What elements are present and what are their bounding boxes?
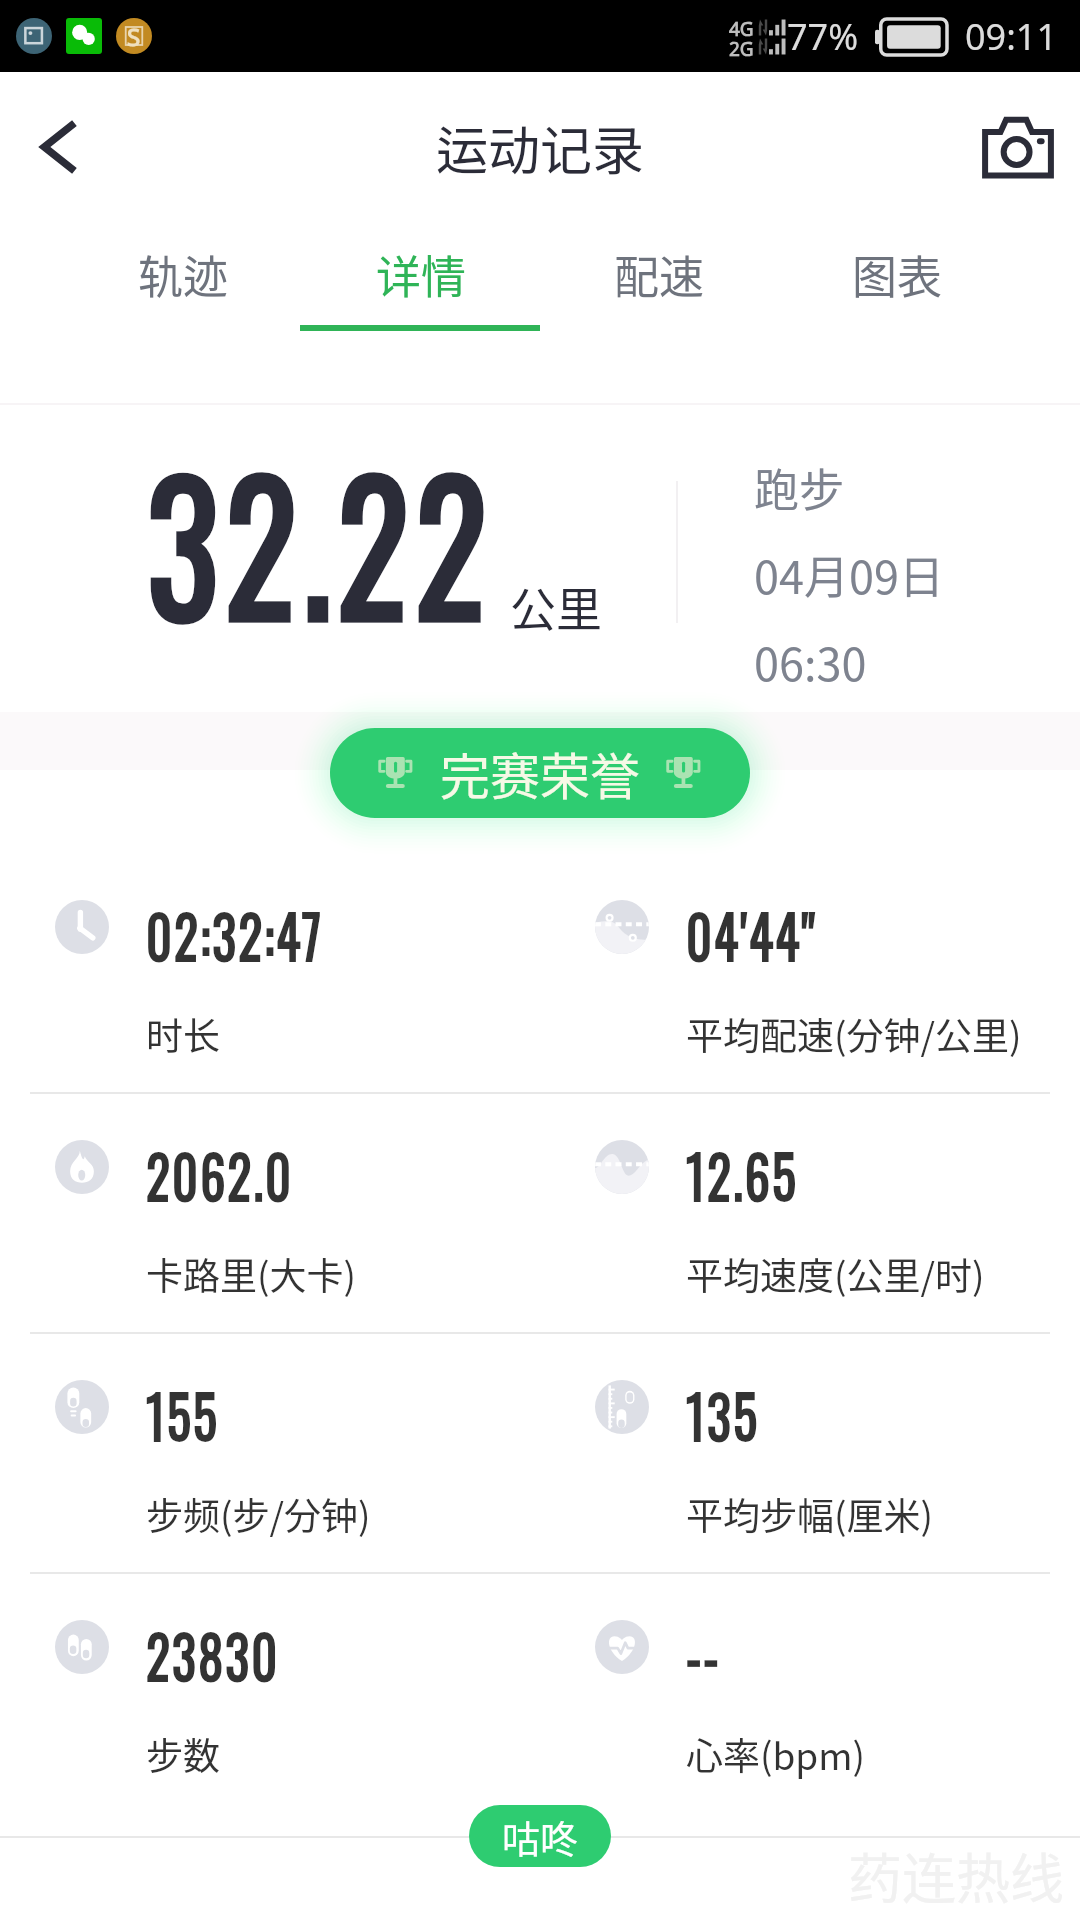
staticText: 135 [686,1371,760,1458]
staticText: 155 [146,1371,219,1458]
button[interactable]: 135 [540,1370,1080,1610]
staticText: 完赛荣誉 [440,737,640,809]
staticText: 4G [729,16,754,42]
staticText: 32.22 [147,409,493,671]
staticText: 平均速度(公里/时) [686,1247,985,1301]
button[interactable]: 2062.0 [0,1130,540,1370]
staticText: 轨迹 [138,242,229,307]
button[interactable]: 23830 [0,1610,540,1850]
button[interactable]: 04'44" [540,890,1080,1130]
staticText: 平均步幅(厘米) [686,1487,934,1541]
staticText: 04'44" [686,891,818,978]
staticText: 跑步 [754,455,845,520]
staticText: 咕咚 [502,1809,579,1864]
staticText: 卡路里(大卡) [146,1247,357,1301]
staticText: 12.65 [686,1131,798,1218]
button[interactable]: -- [540,1610,1080,1850]
staticText: 详情 [376,242,467,307]
staticText: 步数 [146,1727,220,1781]
button[interactable]: 12.65 [540,1130,1080,1370]
button[interactable]: 轨迹 [64,222,302,403]
staticText: 2062.0 [146,1131,294,1218]
staticText: 运动记录 [436,110,645,185]
staticText: 23830 [146,1611,279,1698]
button[interactable]: 配速 [540,222,778,403]
staticText: 步频(步/分钟) [146,1487,371,1541]
button[interactable]: 155 [0,1370,540,1610]
button[interactable]: 02:32:47 [0,890,540,1130]
staticText: 02:32:47 [146,891,324,978]
button[interactable]: 完赛荣誉 [330,728,750,818]
staticText: -- [686,1611,721,1698]
staticText: 平均配速(分钟/公里) [686,1007,1022,1061]
button[interactable]: Camera [950,82,1080,212]
staticText: 药连热线 [848,1836,1064,1914]
staticText: 公里 [510,573,602,640]
staticText: S [127,20,141,53]
button[interactable]: 图表 [778,222,1016,403]
staticText: 04月09日 [754,542,944,607]
staticText: 心率(bpm) [686,1727,866,1781]
staticText: 2G [729,36,754,62]
staticText: 06:30 [754,629,867,694]
staticText: 77% [787,12,859,61]
button[interactable]: Back [0,82,130,212]
button[interactable]: 详情 [302,222,540,403]
staticText: 图表 [852,242,943,307]
staticText: 配速 [614,242,705,307]
button[interactable]: 咕咚 [469,1805,611,1867]
staticText: 09:11 [965,12,1058,61]
staticText: 时长 [146,1007,220,1061]
